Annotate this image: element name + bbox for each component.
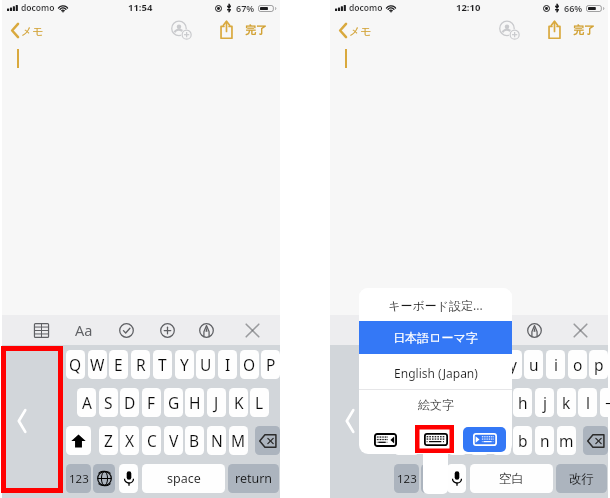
button[interactable]: return xyxy=(228,464,279,493)
button[interactable]: W xyxy=(88,350,107,379)
button[interactable]: 完了 xyxy=(245,19,267,41)
button[interactable]: 123 xyxy=(66,464,91,493)
button[interactable]: h xyxy=(513,388,532,417)
button[interactable]: N xyxy=(207,426,226,455)
button[interactable]: I xyxy=(218,350,237,379)
button[interactable]: Table xyxy=(28,317,54,343)
button[interactable]: C xyxy=(142,426,161,455)
button[interactable]: M xyxy=(229,426,248,455)
button[interactable]: O xyxy=(240,350,259,379)
button[interactable]: Add attachment xyxy=(154,317,180,343)
button[interactable]: P xyxy=(261,350,280,379)
button[interactable]: q xyxy=(394,350,413,379)
button[interactable]: A xyxy=(77,388,96,417)
button[interactable]: Y xyxy=(175,350,194,379)
button[interactable]: Hide keyboard xyxy=(239,317,265,343)
button[interactable]: 空白 xyxy=(470,464,553,493)
button[interactable]: 123 xyxy=(394,464,419,493)
button[interactable] xyxy=(255,426,280,455)
staticText: 完了 xyxy=(573,23,595,37)
button[interactable] xyxy=(93,464,115,493)
button[interactable] xyxy=(66,426,91,455)
button[interactable]: Share xyxy=(543,18,565,40)
button[interactable]: Checklist xyxy=(441,317,467,343)
button[interactable]: 完了 xyxy=(573,19,595,41)
staticText: 12:10 xyxy=(456,1,481,14)
staticText: p xyxy=(594,354,604,375)
button[interactable]: f xyxy=(470,388,489,417)
button[interactable]: L xyxy=(250,388,269,417)
button[interactable]: X xyxy=(120,426,139,455)
button[interactable]: l xyxy=(578,388,597,417)
button[interactable]: Add people xyxy=(169,18,193,42)
button[interactable]: k xyxy=(557,388,576,417)
button[interactable]: Aa xyxy=(399,317,425,343)
button[interactable]: H xyxy=(185,388,204,417)
button[interactable]: Keyboard layout 1 xyxy=(371,430,400,450)
button[interactable]: s xyxy=(427,388,446,417)
button[interactable]: メモ xyxy=(11,23,44,38)
button[interactable]: English (Japan) xyxy=(359,355,512,390)
button[interactable]: j xyxy=(535,388,554,417)
button[interactable]: t xyxy=(481,350,500,379)
button[interactable]: V xyxy=(164,426,183,455)
button[interactable]: Add attachment xyxy=(482,317,508,343)
button[interactable]: e xyxy=(437,350,456,379)
button[interactable]: y xyxy=(503,350,522,379)
button[interactable]: p xyxy=(589,350,608,379)
button[interactable]: 改行 xyxy=(556,464,607,493)
button[interactable]: c xyxy=(470,426,489,455)
button[interactable]: メモ xyxy=(339,23,372,38)
button[interactable]: Next keyboard xyxy=(1,346,63,493)
button[interactable]: D xyxy=(120,388,139,417)
button[interactable]: F xyxy=(142,388,161,417)
button[interactable]: i xyxy=(546,350,565,379)
button[interactable]: Markup xyxy=(193,317,219,343)
button[interactable]: − xyxy=(600,388,610,417)
button[interactable]: x xyxy=(448,426,467,455)
button[interactable] xyxy=(583,426,608,455)
button[interactable]: K xyxy=(229,388,248,417)
button[interactable]: u xyxy=(524,350,543,379)
button[interactable]: Add people xyxy=(497,18,521,42)
button[interactable]: U xyxy=(196,350,215,379)
button[interactable]: v xyxy=(492,426,511,455)
button[interactable]: z xyxy=(427,426,446,455)
button[interactable]: Keyboard layout 2 xyxy=(421,430,451,449)
button[interactable]: m xyxy=(557,426,576,455)
button[interactable]: キーボード設定... xyxy=(359,288,512,321)
button[interactable]: T xyxy=(153,350,172,379)
button[interactable]: R xyxy=(131,350,150,379)
button[interactable]: w xyxy=(416,350,435,379)
button[interactable]: G xyxy=(164,388,183,417)
staticText: 完了 xyxy=(245,23,267,37)
button[interactable] xyxy=(447,464,466,493)
button[interactable]: d xyxy=(448,388,467,417)
button[interactable]: Table xyxy=(356,317,382,343)
button[interactable]: Keyboard layout 3 xyxy=(463,427,506,452)
button[interactable]: 日本語ローマ字 xyxy=(359,321,512,354)
button[interactable]: Markup xyxy=(521,317,547,343)
button[interactable]: E xyxy=(109,350,128,379)
button[interactable] xyxy=(119,464,138,493)
button[interactable]: g xyxy=(492,388,511,417)
button[interactable]: Share xyxy=(215,18,237,40)
button[interactable]: b xyxy=(513,426,532,455)
button[interactable]: o xyxy=(568,350,587,379)
button[interactable]: a xyxy=(405,388,424,417)
button[interactable]: Checklist xyxy=(113,317,139,343)
button[interactable]: n xyxy=(535,426,554,455)
button[interactable]: Hide keyboard xyxy=(567,317,593,343)
button[interactable]: space xyxy=(142,464,225,493)
button[interactable]: J xyxy=(207,388,226,417)
button[interactable] xyxy=(421,464,443,493)
button[interactable]: B xyxy=(185,426,204,455)
button[interactable]: Z xyxy=(99,426,118,455)
button[interactable]: Aa xyxy=(71,317,97,343)
button[interactable]: Q xyxy=(66,350,85,379)
button[interactable]: 絵文字 xyxy=(359,389,512,420)
button[interactable]: r xyxy=(459,350,478,379)
staticText: k xyxy=(562,392,571,413)
button[interactable] xyxy=(394,426,419,455)
button[interactable]: S xyxy=(99,388,118,417)
